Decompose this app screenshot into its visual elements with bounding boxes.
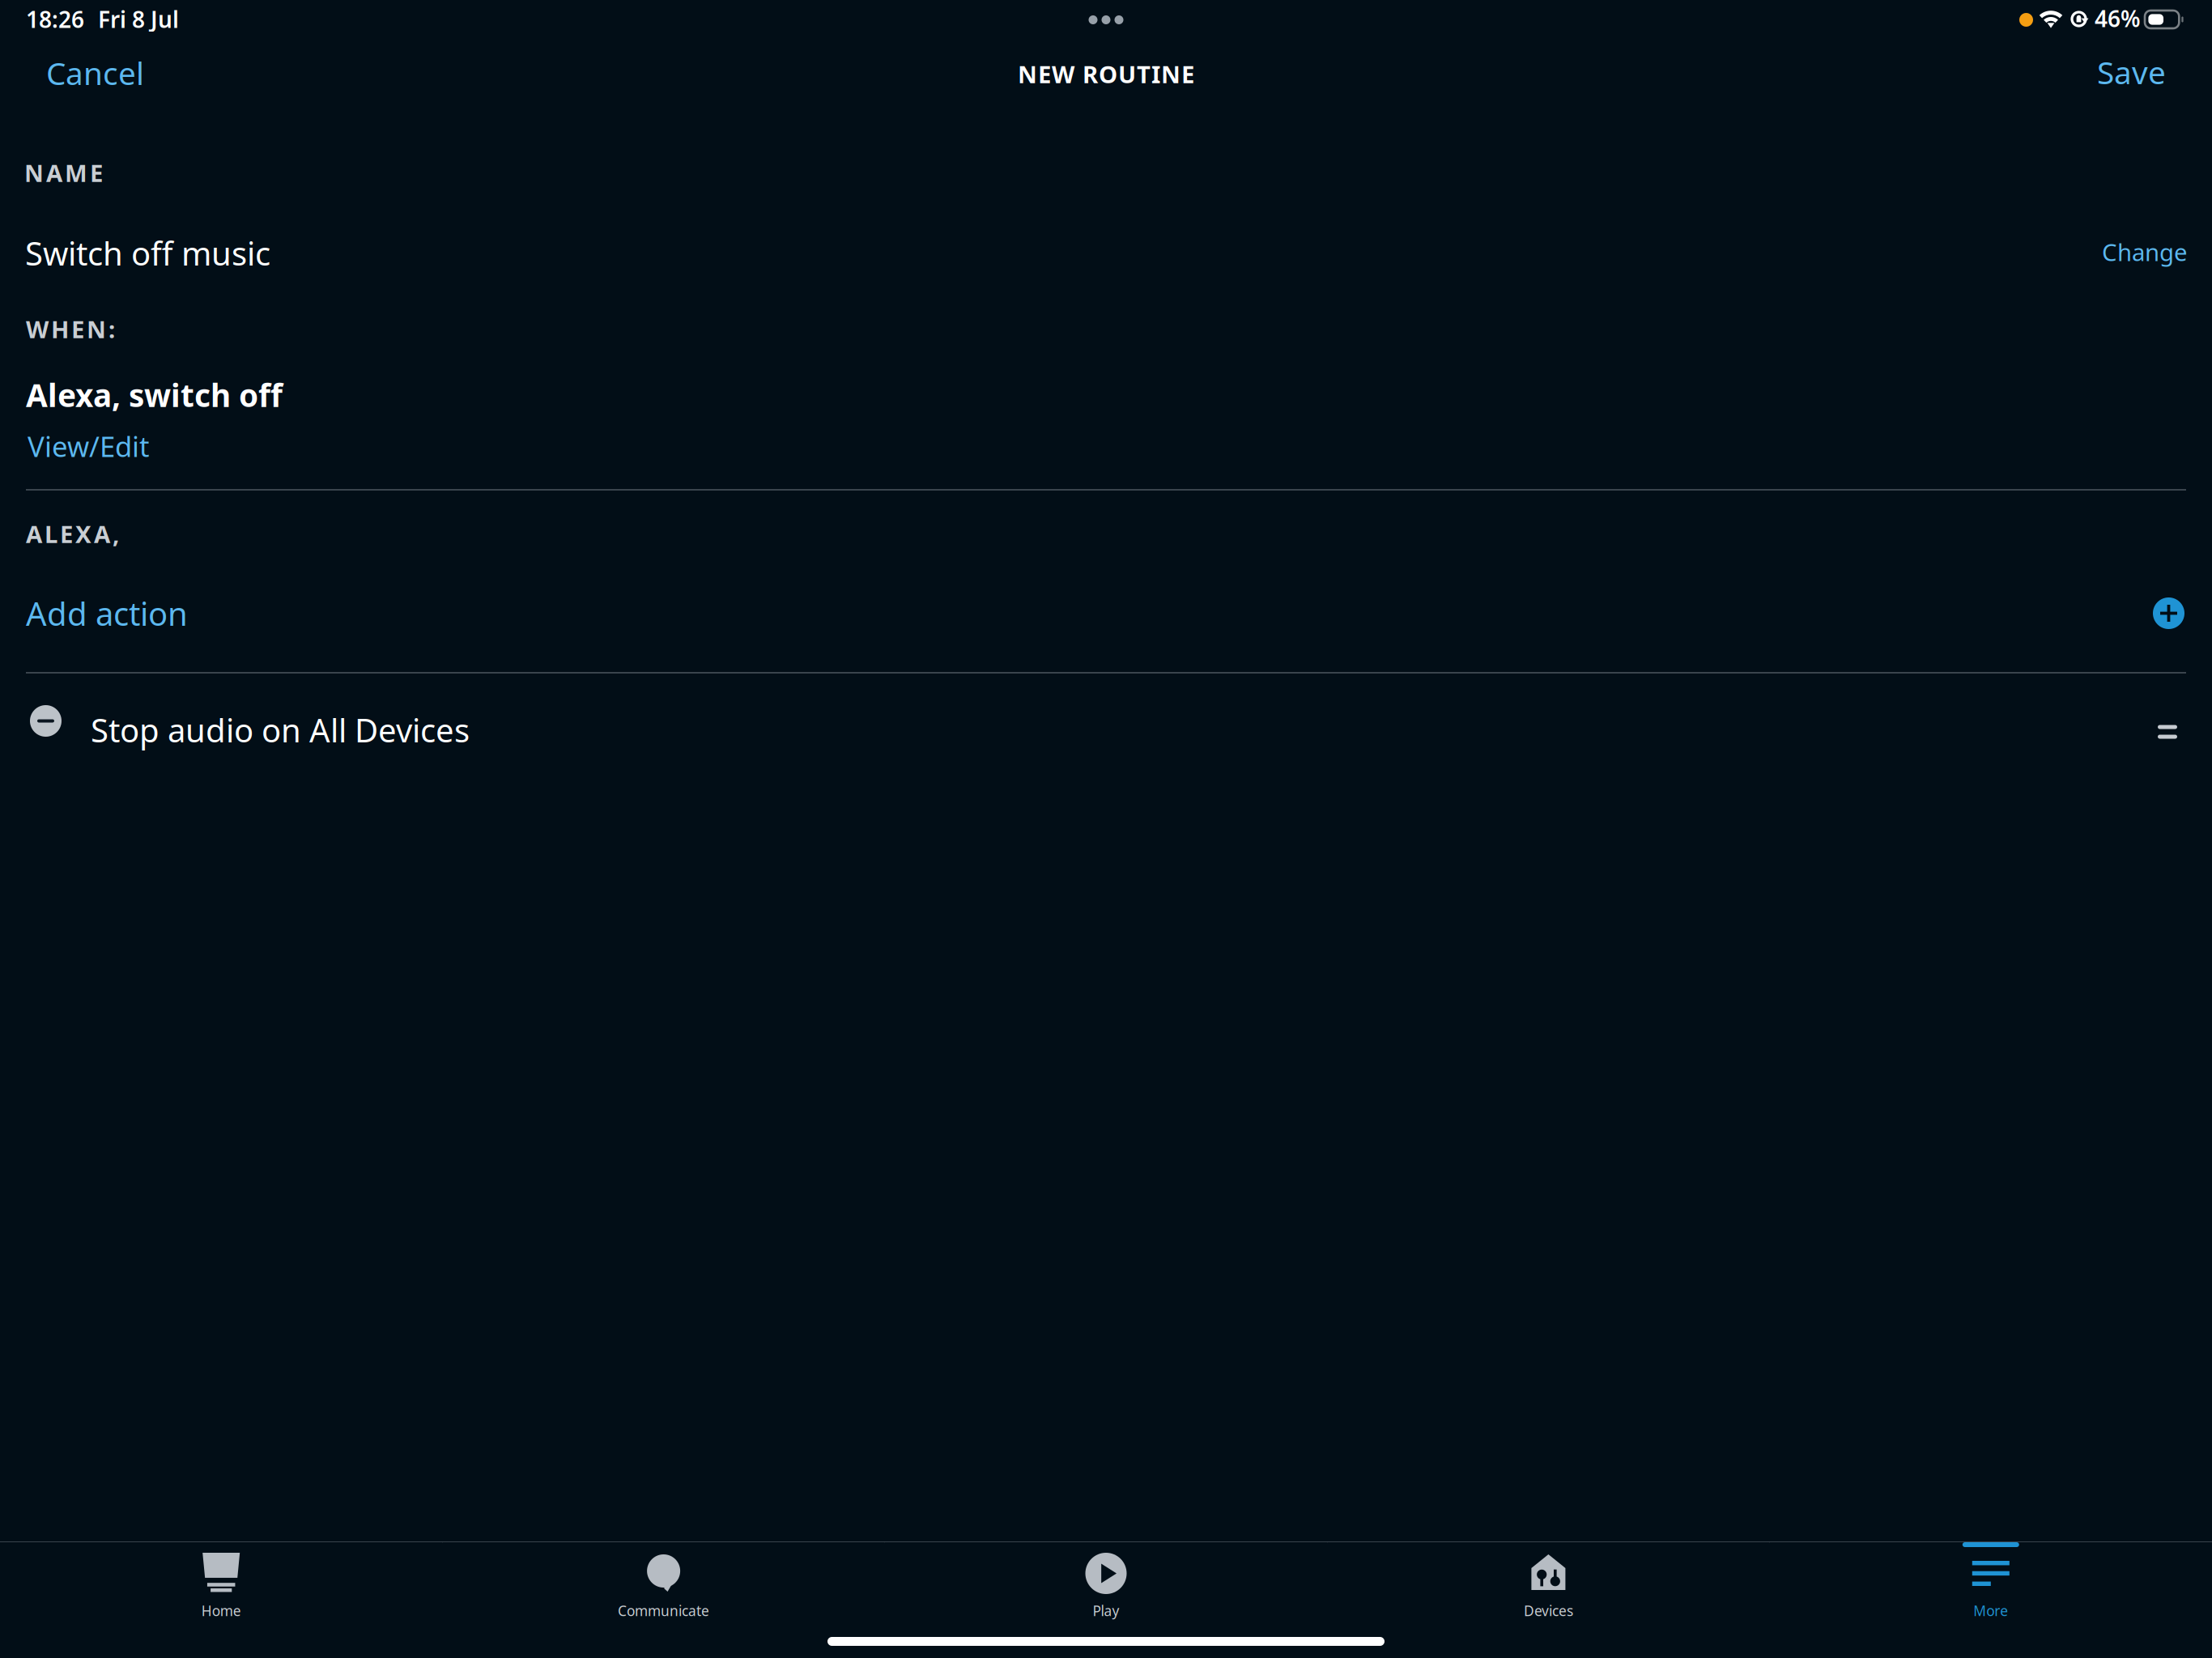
button[interactable]: Home: [0, 1542, 442, 1658]
staticText: Save: [2097, 51, 2166, 93]
staticText: 18:26: [26, 4, 84, 34]
staticText: Stop audio on All Devices: [91, 708, 470, 751]
staticText: Play: [1093, 1601, 1119, 1620]
button[interactable]: Devices: [1327, 1542, 1770, 1658]
staticText: Alexa, switch off: [26, 374, 283, 416]
button[interactable]: Communicate: [442, 1542, 885, 1658]
staticText: WHEN:: [26, 313, 115, 345]
button[interactable]: View/Edit: [13, 412, 167, 457]
staticText: ALEXA,: [26, 518, 119, 550]
button[interactable]: Change: [2073, 215, 2206, 266]
button[interactable]: Remove action: [30, 705, 62, 737]
staticText: Change: [2102, 236, 2188, 268]
staticText: Switch off music: [25, 232, 270, 275]
staticText: View/Edit: [28, 427, 150, 465]
staticText: Fri 8 Jul: [98, 4, 179, 34]
button[interactable]: Cancel: [28, 32, 190, 91]
staticText: NEW ROUTINE: [1018, 58, 1194, 90]
staticText: Communicate: [618, 1601, 709, 1620]
button[interactable]: Save: [2083, 31, 2184, 91]
button[interactable]: Add action: [26, 580, 2186, 631]
staticText: Cancel: [46, 52, 144, 94]
button[interactable]: Reorder action: [2158, 725, 2177, 739]
button[interactable]: More: [1770, 1542, 2212, 1658]
button[interactable]: Play: [885, 1542, 1327, 1658]
staticText: Devices: [1524, 1601, 1573, 1620]
staticText: Home: [201, 1601, 241, 1620]
staticText: Add action: [26, 592, 188, 635]
staticText: More: [1973, 1601, 2008, 1620]
staticText: NAME: [24, 157, 103, 189]
staticText: 46%: [2095, 3, 2141, 33]
